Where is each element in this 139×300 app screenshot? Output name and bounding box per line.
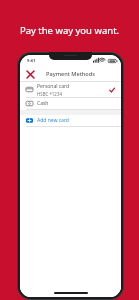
staticText: HSBC *1234 xyxy=(37,91,62,97)
button[interactable]: Close xyxy=(24,68,36,80)
staticText: 9:41 xyxy=(27,58,36,64)
staticText: Add new card xyxy=(37,117,69,124)
button[interactable]: Cash xyxy=(20,98,121,109)
staticText: Pay the way you want. xyxy=(0,24,139,37)
button[interactable]: Personal card xyxy=(20,82,121,97)
staticText: Cash xyxy=(37,100,49,107)
staticText: Payment Methods xyxy=(46,70,95,78)
staticText: Personal card xyxy=(37,83,70,90)
button[interactable]: Add new card xyxy=(20,115,121,126)
